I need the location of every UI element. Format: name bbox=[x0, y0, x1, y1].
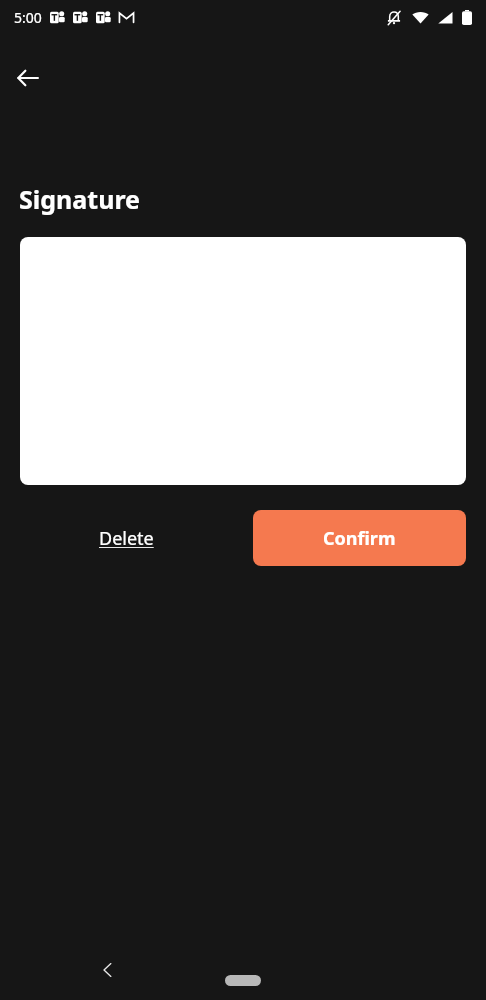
staticText: Delete bbox=[99, 526, 154, 551]
button[interactable]: Delete bbox=[77, 512, 175, 564]
button[interactable]: Signature drawing area bbox=[20, 237, 466, 485]
button[interactable]: Home bbox=[213, 965, 273, 995]
button[interactable]: Back bbox=[6, 56, 50, 100]
button[interactable]: Confirm bbox=[253, 510, 466, 566]
button[interactable]: Back bbox=[86, 948, 130, 992]
staticText: Confirm bbox=[323, 526, 396, 551]
staticText: Signature bbox=[19, 182, 140, 216]
staticText: 5:00 bbox=[14, 8, 42, 27]
